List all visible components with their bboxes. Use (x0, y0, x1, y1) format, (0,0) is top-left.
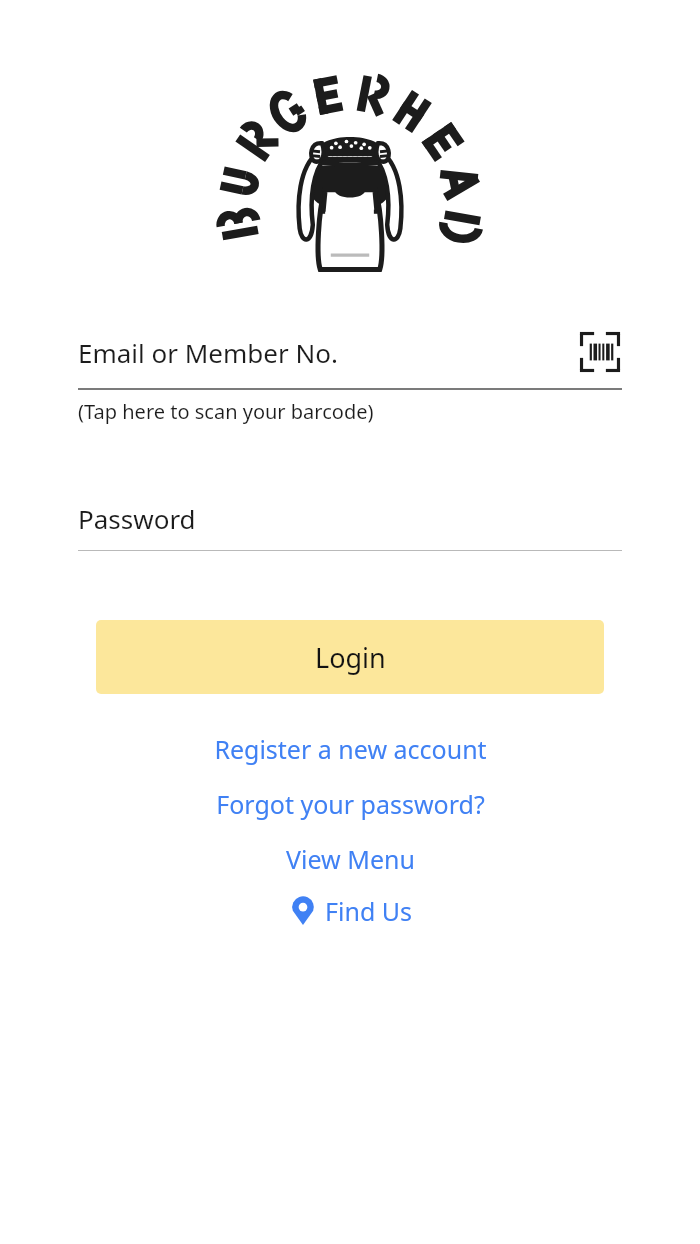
staticText: Login (315, 639, 386, 676)
staticText: Email or Member No. (78, 335, 578, 370)
staticText: Find Us (325, 894, 413, 928)
staticText: Register a new account (214, 732, 487, 766)
button[interactable]: Email or Member No. (0, 330, 700, 425)
staticText: (Tap here to scan your barcode) (78, 398, 374, 425)
staticText: Forgot your password? (216, 787, 485, 821)
button[interactable]: Forgot your password? (0, 787, 700, 821)
button[interactable]: View Menu (0, 842, 700, 876)
staticText: View Menu (286, 842, 415, 876)
button[interactable]: Login (96, 620, 604, 694)
button[interactable]: Password (0, 501, 700, 551)
button[interactable]: Scan barcode (578, 330, 622, 374)
staticText: Password (78, 501, 196, 536)
button[interactable]: Find Us (0, 894, 700, 928)
button[interactable]: Register a new account (0, 732, 700, 766)
